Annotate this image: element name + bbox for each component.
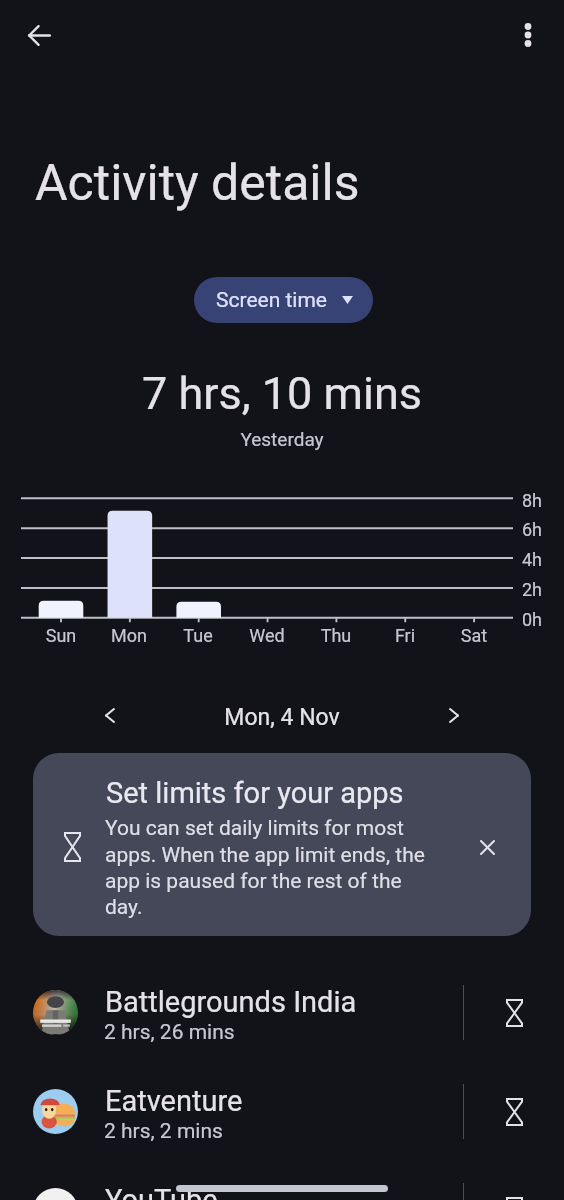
button[interactable]: Eatventure [0, 1071, 564, 1171]
staticText: 8h [522, 490, 543, 511]
button[interactable]: Previous day [87, 692, 133, 738]
staticText: 2h [522, 579, 543, 600]
button[interactable] [33, 753, 531, 936]
button[interactable]: Battlegrounds India [0, 972, 564, 1072]
staticText: Activity details [35, 154, 360, 213]
staticText: You can set daily limits for most apps. … [105, 816, 425, 919]
staticText: 4h [522, 549, 543, 570]
staticText: Mon [94, 625, 164, 646]
staticText: Sun [26, 625, 96, 646]
staticText: Set limits for your apps [106, 776, 404, 810]
staticText: Screen time [216, 288, 327, 313]
staticText: 7 hrs, 10 mins [0, 367, 564, 420]
button[interactable]: YouTube [0, 1170, 564, 1200]
staticText: Sat [439, 625, 509, 646]
staticText: 0h [522, 609, 543, 630]
button[interactable]: More options [504, 11, 552, 59]
staticText: Eatventure [105, 1084, 243, 1118]
staticText: Fri [370, 625, 440, 646]
button[interactable]: Dismiss [462, 822, 512, 872]
button[interactable]: Next day [431, 692, 477, 738]
button[interactable]: Set app timer [489, 988, 539, 1038]
button[interactable]: Back [15, 11, 63, 59]
button[interactable]: Screen time [194, 277, 373, 323]
staticText: Wed [232, 625, 302, 646]
button[interactable]: Set app timer [489, 1087, 539, 1137]
staticText: Thu [301, 625, 371, 646]
staticText: Tue [163, 625, 233, 646]
staticText: Yesterday [0, 428, 564, 450]
staticText: Mon, 4 Nov [0, 704, 564, 731]
staticText: 6h [522, 519, 543, 540]
staticText: 2 hrs, 26 mins [104, 1020, 235, 1045]
staticText: YouTube [105, 1183, 218, 1200]
staticText: 2 hrs, 2 mins [104, 1119, 223, 1144]
staticText: Battlegrounds India [105, 985, 357, 1019]
button[interactable]: Set app timer [489, 1186, 539, 1200]
